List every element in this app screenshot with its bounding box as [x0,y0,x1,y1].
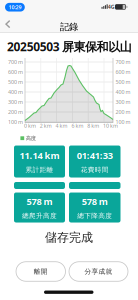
button[interactable] [0,18,16,30]
button[interactable]: 儲存完成 [45,230,93,245]
staticText: 700 m [8,58,23,66]
staticText: 記錄 [60,21,78,33]
staticText: 10:29 [8,4,21,11]
staticText: 100 m [115,118,130,126]
staticText: 10 km [103,122,118,129]
button[interactable]: 離開 [16,262,65,281]
staticText: 200 m [115,108,130,116]
staticText: 分享成就 [84,267,112,276]
staticText: 600 m [8,68,23,76]
staticText: 01:41:33 [77,149,113,162]
staticText: 578 m [82,195,108,208]
staticText: 累計距離 [25,166,53,174]
staticText: 離開 [34,267,48,276]
staticText: 100 m [8,118,23,126]
staticText: 6 km [71,122,83,129]
staticText: 300 m [8,98,23,106]
staticText: 500 m [8,78,23,86]
staticText: 4G [108,3,115,10]
staticText: 578 m [26,195,52,208]
staticText: 花費時間 [81,166,109,174]
staticText: 400 m [115,88,130,96]
staticText: 儲存完成 [45,230,93,245]
button[interactable]: 分享成就 [69,262,128,281]
staticText: 0 km [24,122,36,129]
staticText: 300 m [115,98,130,106]
staticText: 200 m [8,108,23,116]
staticText: 2 km [40,122,52,129]
staticText: 8 km [87,122,99,129]
staticText: 700 m [115,58,130,66]
button[interactable]: 10:29 [5,3,25,12]
staticText: 總下降高度 [77,212,112,220]
staticText: 4 km [56,122,68,129]
staticText: 總爬升高度 [22,212,57,220]
staticText: 400 m [8,88,23,96]
staticText: 高度 [26,135,36,141]
staticText: 600 m [115,68,130,76]
staticText: 500 m [115,78,130,86]
staticText: 20250503 屏東保和以山 [7,39,132,54]
staticText: 11.14 km [19,149,59,162]
